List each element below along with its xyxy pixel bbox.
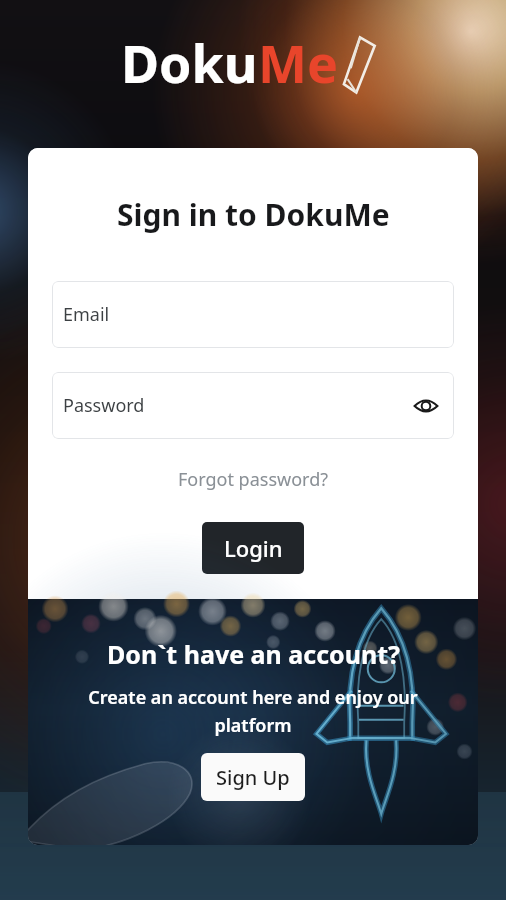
- staticText: Me: [258, 27, 339, 98]
- staticText: Sign Up: [216, 764, 290, 791]
- button[interactable]: Password: [52, 372, 454, 439]
- staticText: Email: [63, 302, 110, 327]
- staticText: Login: [224, 533, 283, 563]
- staticText: Don`t have an account?: [107, 637, 400, 671]
- staticText: Forgot password?: [178, 467, 329, 492]
- button[interactable]: Forgot password?: [172, 465, 335, 494]
- staticText: Sign in to DokuMe: [117, 194, 390, 235]
- button[interactable]: Show password: [409, 389, 443, 423]
- staticText: Doku: [121, 27, 258, 98]
- button[interactable]: Email: [52, 281, 454, 348]
- staticText: Password: [63, 393, 145, 418]
- staticText: Create an account here and enjoy our pla…: [88, 685, 418, 737]
- button[interactable]: Login: [202, 522, 304, 574]
- button[interactable]: Sign Up: [201, 753, 305, 801]
